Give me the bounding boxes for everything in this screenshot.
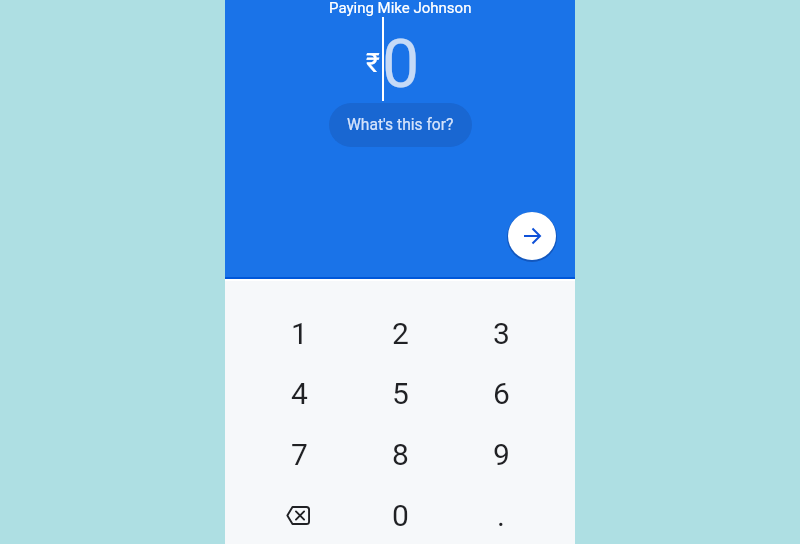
button[interactable]: 5: [356, 364, 444, 422]
staticText: .: [497, 498, 505, 533]
staticText: 9: [493, 437, 510, 472]
button[interactable]: .: [457, 486, 545, 544]
staticText: 3: [493, 316, 510, 351]
staticText: 4: [291, 376, 308, 411]
button[interactable]: Backspace: [255, 486, 343, 544]
button[interactable]: 4: [255, 364, 343, 422]
button[interactable]: What's this for?: [329, 103, 472, 147]
staticText: 7: [291, 437, 308, 472]
staticText: 6: [493, 376, 510, 411]
staticText: 5: [392, 376, 409, 411]
staticText: 1: [291, 316, 308, 351]
button[interactable]: Send payment: [508, 212, 556, 260]
button[interactable]: 2: [356, 304, 444, 362]
staticText: 0: [382, 25, 420, 103]
staticText: 0: [392, 498, 409, 533]
staticText: ₹: [366, 47, 380, 78]
button[interactable]: 3: [457, 304, 545, 362]
button[interactable]: 0: [356, 486, 444, 544]
staticText: 2: [392, 316, 409, 351]
button[interactable]: 8: [356, 425, 444, 483]
button[interactable]: 7: [255, 425, 343, 483]
button[interactable]: 9: [457, 425, 545, 483]
button[interactable]: 6: [457, 364, 545, 422]
staticText: What's this for?: [347, 116, 454, 134]
button[interactable]: 1: [255, 304, 343, 362]
button[interactable]: Paying Mike Johnson: [329, 0, 472, 17]
staticText: 8: [392, 437, 409, 472]
